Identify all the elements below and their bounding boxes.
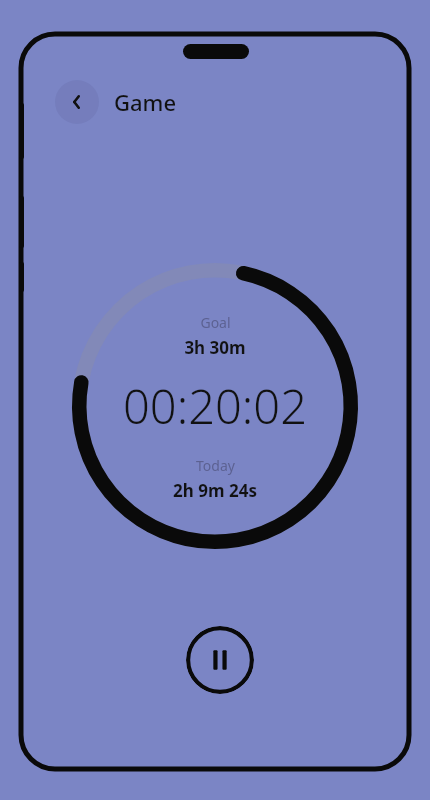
staticText: Today [196, 456, 235, 475]
staticText: 3h 30m [184, 336, 246, 359]
button[interactable]: Pause [186, 626, 254, 694]
staticText: Game [114, 87, 177, 117]
staticText: Goal [200, 313, 231, 332]
button[interactable]: Back [55, 80, 99, 124]
staticText: 00:20:02 [123, 374, 307, 438]
staticText: 2h 9m 24s [173, 479, 257, 502]
